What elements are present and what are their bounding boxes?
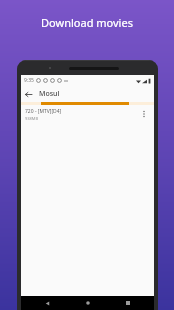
button[interactable]: Back (21, 87, 35, 101)
staticText: 720 - [MTV][D4] (25, 108, 62, 115)
staticText: 9:35 (24, 77, 34, 84)
button[interactable]: More options (138, 105, 150, 123)
button[interactable]: Home (73, 296, 103, 310)
staticText: Mosul (39, 89, 60, 99)
staticText: Download movies (0, 15, 174, 30)
staticText: 938MB (25, 116, 39, 121)
button[interactable]: Back (32, 296, 62, 310)
button[interactable]: 720 - [MTV][D4] (21, 105, 154, 123)
button[interactable]: Recent apps (113, 296, 143, 310)
